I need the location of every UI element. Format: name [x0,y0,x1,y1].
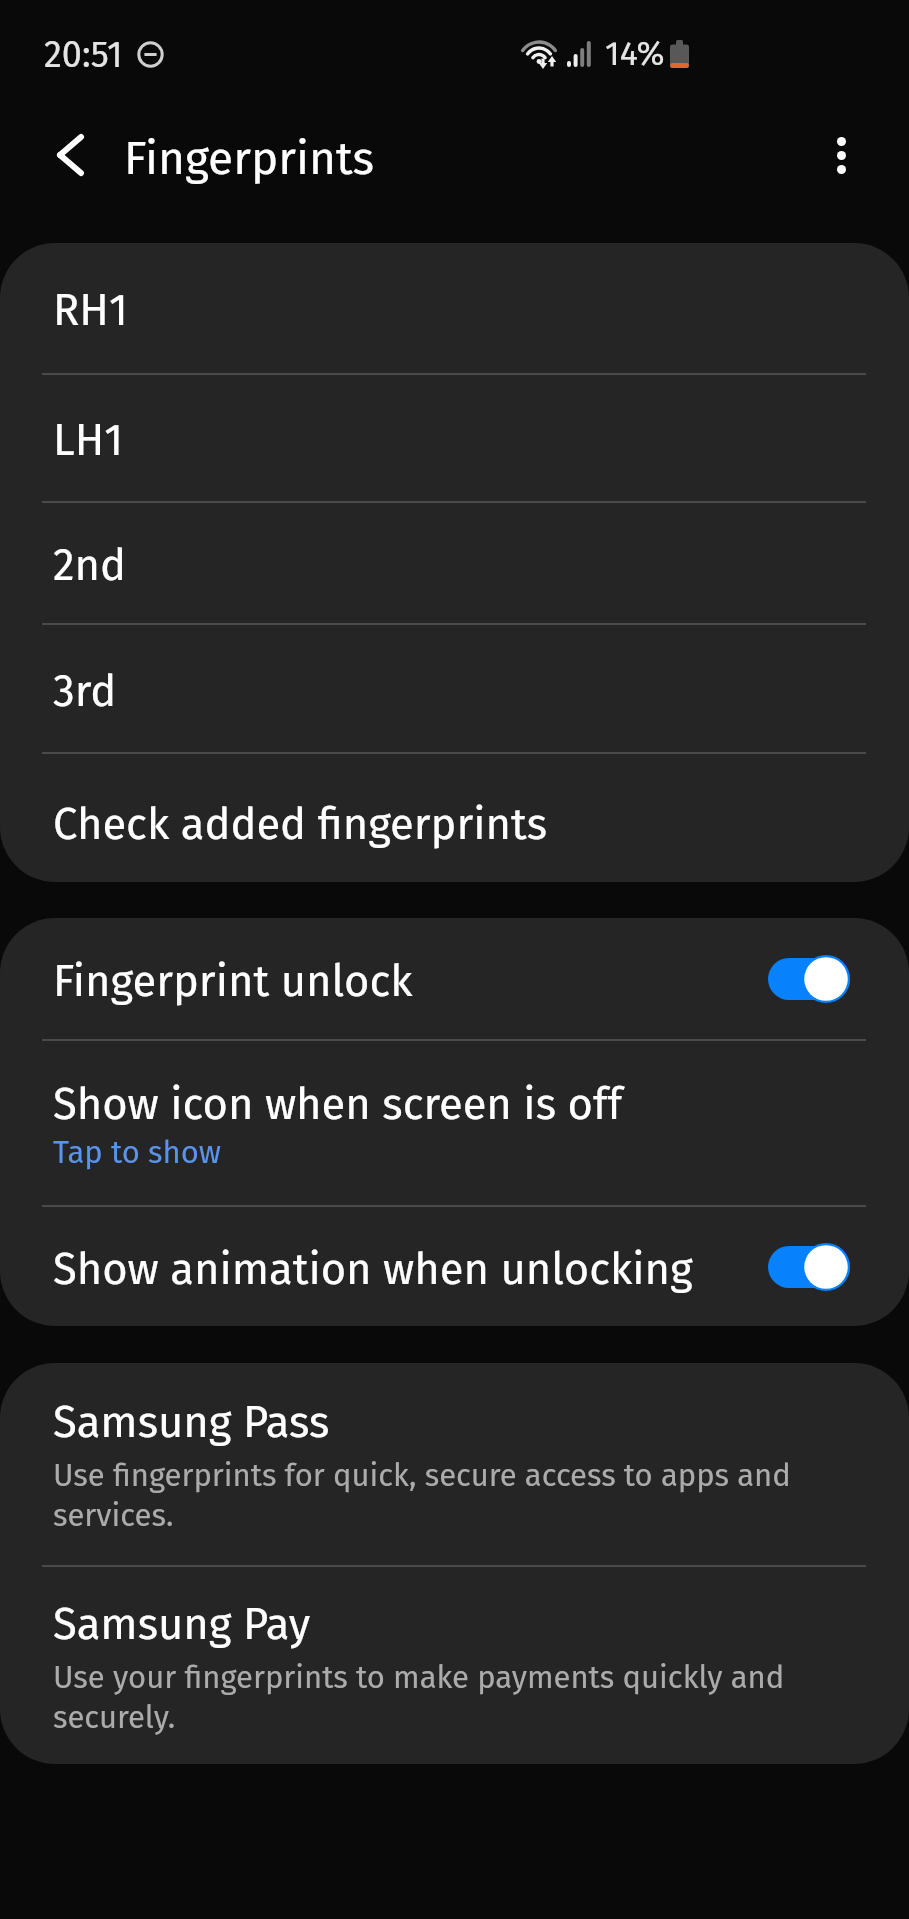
staticText: Tap to show [53,1134,221,1171]
button[interactable]: Show animation when unlocking [0,1207,909,1326]
staticText: Use your fingerprints to make payments q… [53,1659,833,1736]
staticText: Samsung Pass [53,1396,330,1448]
staticText: RH1 [53,284,128,336]
button[interactable]: Check added fingerprints [0,754,909,882]
button[interactable]: Toggle, on [768,1242,850,1292]
button[interactable]: 2nd [0,503,909,623]
staticText: 2nd [53,539,127,591]
button[interactable]: Fingerprint unlock [0,918,909,1039]
button[interactable]: Navigate up [36,121,104,189]
staticText: 14% [605,33,665,74]
staticText: 20:51 [44,33,123,76]
staticText: Show animation when unlocking [53,1243,768,1295]
button[interactable]: More options [805,119,877,191]
staticText: Fingerprints [124,131,375,186]
staticText: Check added fingerprints [53,798,547,850]
button[interactable]: LH1 [0,375,909,501]
button[interactable]: RH1 [0,243,909,373]
button[interactable]: Samsung Pay [0,1567,909,1764]
staticText: Samsung Pay [53,1598,311,1650]
button[interactable]: Show icon when screen is off [0,1041,909,1205]
staticText: 3rd [53,665,117,717]
button[interactable]: Toggle, on [768,954,850,1004]
staticText: Fingerprint unlock [53,955,768,1007]
staticText: Show icon when screen is off [53,1078,623,1130]
button[interactable]: Samsung Pass [0,1363,909,1565]
staticText: LH1 [53,414,124,466]
staticText: Use fingerprints for quick, secure acces… [53,1457,833,1534]
button[interactable]: 3rd [0,625,909,752]
